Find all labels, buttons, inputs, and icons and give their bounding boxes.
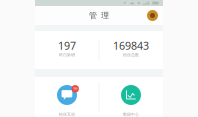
staticText: 昨日新增 <box>59 52 75 57</box>
staticText: 管 <box>89 11 97 20</box>
button[interactable]: 数据中心 <box>99 77 163 117</box>
staticText: 99 <box>73 86 77 91</box>
button[interactable]: Profile <box>147 10 158 21</box>
staticText: 197 <box>58 38 76 53</box>
staticText: 粉丝互动 <box>59 112 75 117</box>
button[interactable]: 169843 <box>99 31 163 69</box>
staticText: 理 <box>101 11 109 20</box>
staticText: 数据中心 <box>123 112 139 117</box>
button[interactable]: 197 <box>35 31 99 69</box>
staticText: 169843 <box>113 38 149 53</box>
staticText: 粉丝总数 <box>123 52 139 57</box>
button[interactable]: 99 <box>35 77 99 117</box>
